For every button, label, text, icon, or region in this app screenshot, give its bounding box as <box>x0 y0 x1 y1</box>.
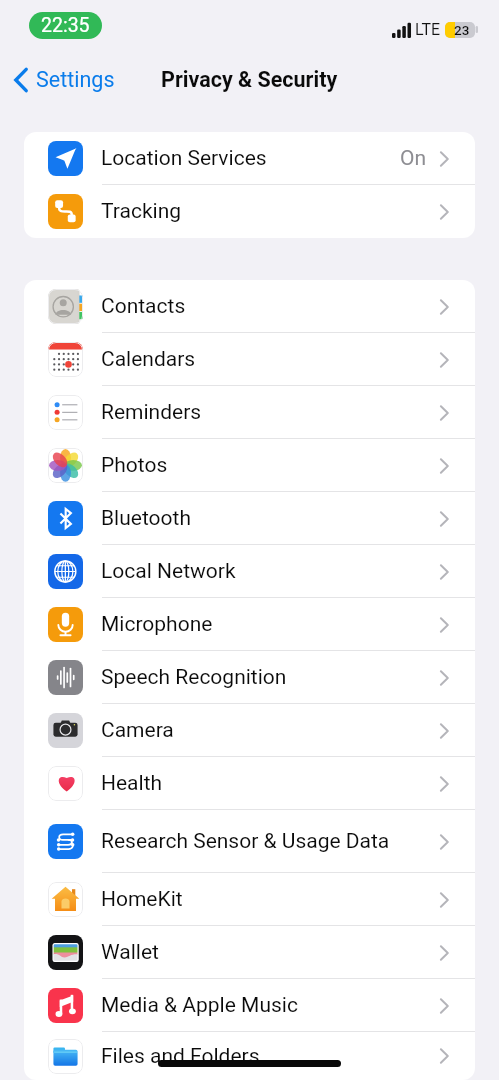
staticText: Bluetooth <box>101 506 191 531</box>
staticText: 23 <box>454 22 470 38</box>
button[interactable]: Photos <box>24 439 475 492</box>
button[interactable]: Research Sensor & Usage Data <box>24 810 475 873</box>
button[interactable]: Bluetooth <box>24 492 475 545</box>
staticText: 22:35 <box>41 14 90 37</box>
staticText: Microphone <box>101 612 213 637</box>
staticText: Media & Apple Music <box>101 993 298 1018</box>
button[interactable]: Location Services <box>24 132 475 185</box>
button[interactable]: Calendars <box>24 333 475 386</box>
staticText: Camera <box>101 718 174 743</box>
button[interactable]: Contacts <box>24 280 475 333</box>
staticText: Contacts <box>101 294 186 319</box>
staticText: HomeKit <box>101 887 183 912</box>
staticText: Calendars <box>101 347 196 372</box>
staticText: Privacy & Security <box>161 67 338 92</box>
button[interactable]: Camera <box>24 704 475 757</box>
button[interactable]: Health <box>24 757 475 810</box>
button[interactable]: Files and Folders <box>24 1032 475 1080</box>
staticText: Location Services <box>101 146 267 171</box>
staticText: LTE <box>415 20 441 39</box>
staticText: Research Sensor & Usage Data <box>101 829 390 854</box>
button[interactable]: Media & Apple Music <box>24 979 475 1032</box>
staticText: Settings <box>36 67 115 92</box>
staticText: Files and Folders <box>101 1044 260 1069</box>
staticText: Local Network <box>101 559 236 584</box>
staticText: Tracking <box>101 199 182 224</box>
staticText: Speech Recognition <box>101 665 287 690</box>
staticText: Wallet <box>101 940 159 965</box>
button[interactable]: Reminders <box>24 386 475 439</box>
staticText: Health <box>101 771 163 796</box>
button[interactable]: HomeKit <box>24 873 475 926</box>
button[interactable]: Microphone <box>24 598 475 651</box>
staticText: Photos <box>101 453 168 478</box>
button[interactable]: Local Network <box>24 545 475 598</box>
staticText: Reminders <box>101 400 202 425</box>
button[interactable]: Wallet <box>24 926 475 979</box>
staticText: On <box>400 146 427 171</box>
button[interactable]: Tracking <box>24 185 475 238</box>
button[interactable]: Speech Recognition <box>24 651 475 704</box>
button[interactable]: Settings <box>8 61 123 98</box>
